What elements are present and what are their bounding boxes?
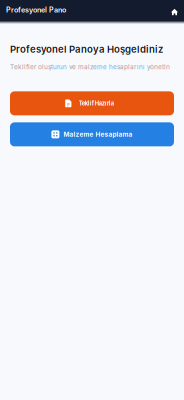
staticText: Teklifler oluşturun ve malzeme hesapları… bbox=[10, 63, 170, 71]
button[interactable]: Home bbox=[165, 4, 180, 16]
button[interactable]: Malzeme Hesaplama bbox=[10, 122, 174, 146]
staticText: Teklif Hazırla bbox=[79, 100, 114, 107]
staticText: Profesyonel Panoya Hoşgeldiniz bbox=[10, 43, 163, 55]
staticText: Profesyonel Pano bbox=[6, 6, 66, 14]
staticText: Malzeme Hesaplama bbox=[64, 130, 133, 138]
button[interactable]: Teklif Hazırla bbox=[10, 91, 174, 115]
